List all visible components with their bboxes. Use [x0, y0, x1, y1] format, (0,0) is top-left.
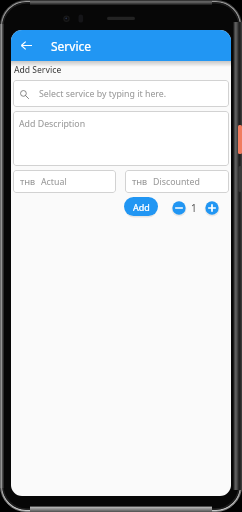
- button[interactable]: THB: [13, 170, 116, 193]
- staticText: Select service by typing it here.: [39, 88, 167, 100]
- button[interactable]: Add: [124, 197, 158, 216]
- staticText: Discounted: [153, 176, 200, 188]
- staticText: Add Description: [19, 118, 86, 130]
- button[interactable]: Increase quantity: [205, 201, 219, 215]
- staticText: THB: [20, 177, 36, 188]
- staticText: THB: [132, 177, 148, 188]
- button[interactable]: Select service by typing it here.: [13, 80, 229, 107]
- button[interactable]: Decrease quantity: [172, 201, 186, 215]
- staticText: Actual: [41, 176, 67, 188]
- staticText: 1: [191, 201, 197, 215]
- button[interactable]: Back: [15, 34, 38, 57]
- staticText: Add: [133, 201, 150, 213]
- staticText: Add Service: [14, 64, 62, 76]
- staticText: Service: [51, 38, 92, 54]
- button[interactable]: Add Description: [13, 111, 229, 166]
- button[interactable]: THB: [125, 170, 229, 193]
